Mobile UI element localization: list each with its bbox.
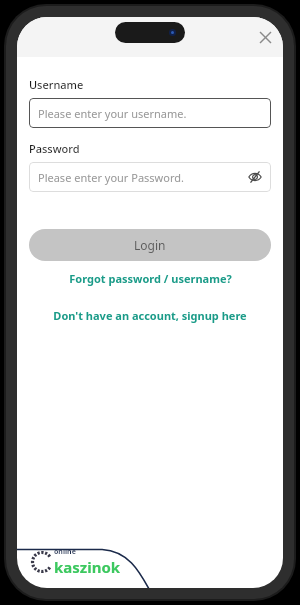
button[interactable]: Login xyxy=(29,229,271,261)
staticText: Don't have an account, signup here xyxy=(53,308,247,323)
button[interactable]: Don't have an account, signup here xyxy=(17,308,283,323)
staticText: Password xyxy=(29,141,80,156)
staticText: Please enter your username. xyxy=(38,106,187,121)
button[interactable]: Please enter your Password. xyxy=(29,162,271,192)
button[interactable]: Show password xyxy=(243,165,267,189)
staticText: Please enter your Password. xyxy=(38,170,184,185)
staticText: Forgot password / username? xyxy=(69,271,232,286)
button[interactable]: Please enter your username. xyxy=(29,98,271,128)
button[interactable]: Forgot password / username? xyxy=(17,271,283,286)
staticText: Username xyxy=(29,77,84,92)
button[interactable]: online kaszinok logo xyxy=(31,547,121,577)
button[interactable]: Close xyxy=(251,23,279,51)
staticText: online xyxy=(54,547,76,557)
staticText: kaszinok xyxy=(54,557,121,577)
staticText: Login xyxy=(134,237,166,253)
